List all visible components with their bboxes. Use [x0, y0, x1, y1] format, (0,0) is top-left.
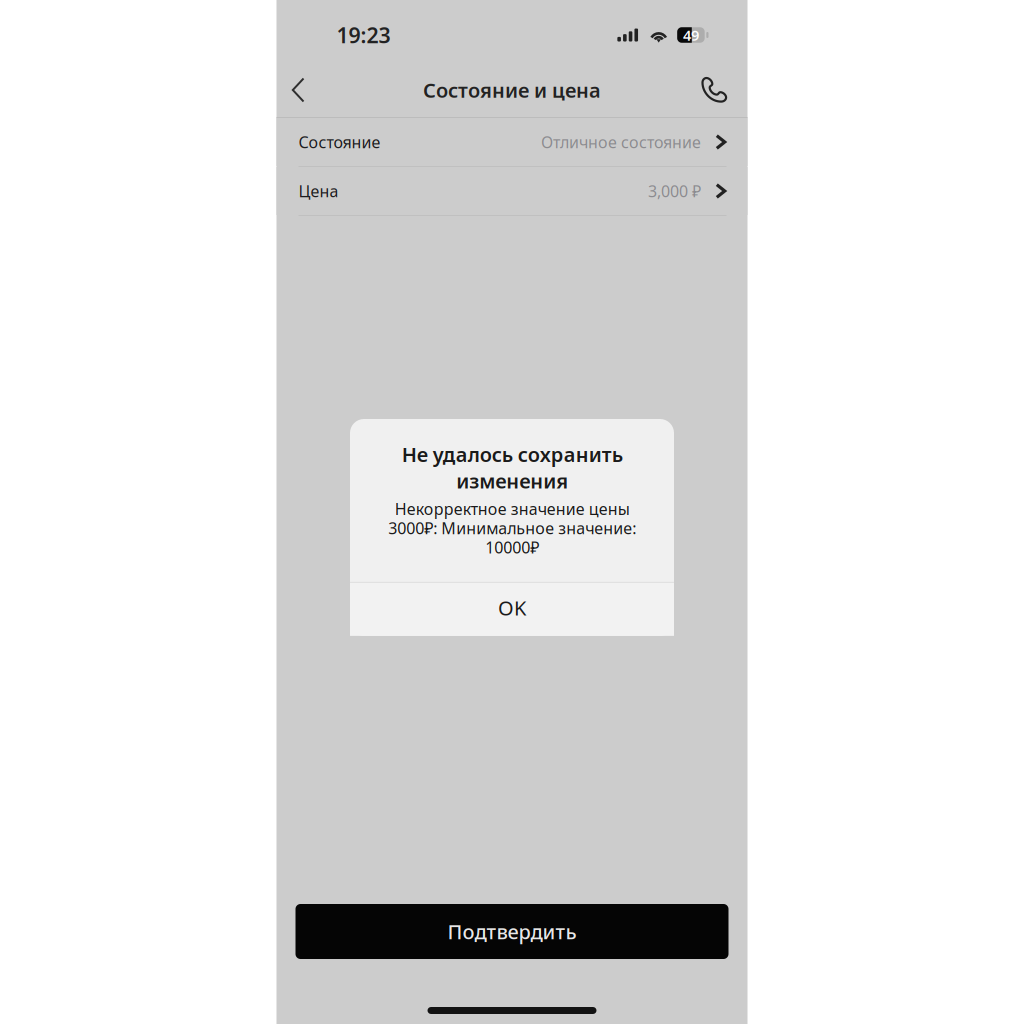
- staticText: OK: [498, 595, 526, 621]
- staticText: Состояние: [298, 131, 380, 153]
- button[interactable]: Состояние: [276, 118, 747, 166]
- staticText: Цена: [298, 180, 338, 202]
- staticText: 49: [683, 25, 699, 45]
- staticText: 19:23: [336, 21, 390, 49]
- staticText: Подтвердить: [447, 918, 576, 945]
- button[interactable]: Цена: [276, 167, 747, 215]
- staticText: Не удалось сохранить изменения: [401, 441, 622, 494]
- staticText: Отличное состояние: [541, 131, 701, 153]
- button[interactable]: OK: [350, 583, 674, 636]
- staticText: Некорректное значение цены 3000₽: Минима…: [388, 498, 636, 558]
- staticText: Состояние и цена: [423, 77, 601, 103]
- staticText: 3,000 ₽: [648, 180, 701, 202]
- button[interactable]: Подтвердить: [295, 904, 728, 959]
- button[interactable]: Назад: [276, 67, 320, 113]
- button[interactable]: Позвонить: [692, 67, 736, 113]
